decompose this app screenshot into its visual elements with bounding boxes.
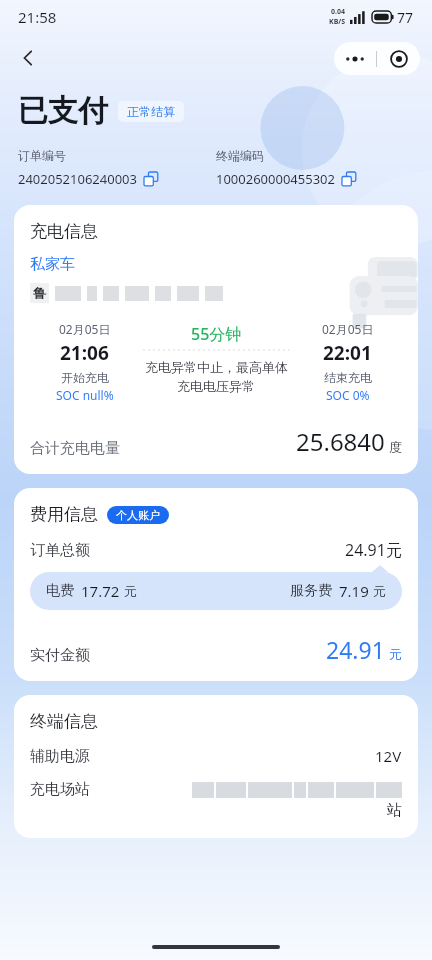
- staticText: 充电电压异常: [177, 378, 255, 394]
- staticText: 服务费: [290, 582, 332, 600]
- staticText: SOC null%: [56, 387, 114, 403]
- staticText: 充电场站: [30, 780, 90, 799]
- staticText: 合计充电电量: [30, 439, 120, 458]
- staticText: 鲁: [33, 285, 46, 301]
- staticText: 已支付: [18, 92, 108, 130]
- staticText: 1000260000455302: [216, 170, 335, 188]
- staticText: 17.72: [81, 581, 120, 601]
- button[interactable]: Copy terminal code: [342, 172, 357, 187]
- staticText: 辅助电源: [30, 747, 90, 766]
- staticText: 55分钟: [191, 323, 242, 345]
- staticText: 终端编码: [216, 148, 264, 163]
- staticText: SOC 0%: [326, 387, 370, 403]
- staticText: 25.6840: [296, 425, 385, 458]
- staticText: 77: [397, 8, 414, 27]
- button[interactable]: Back: [8, 38, 48, 78]
- staticText: 结束充电: [324, 370, 372, 385]
- staticText: 24.91: [326, 634, 385, 665]
- staticText: 元: [124, 583, 137, 599]
- button[interactable]: Copy order number: [144, 172, 159, 187]
- button[interactable]: Close: [377, 42, 420, 75]
- staticText: 7.19: [339, 581, 369, 601]
- staticText: 充电异常中止，最高单体: [145, 359, 288, 375]
- button[interactable]: More: [334, 42, 376, 75]
- staticText: 22:01: [323, 340, 372, 366]
- staticText: 费用信息: [30, 504, 98, 525]
- staticText: 2402052106240003: [18, 170, 137, 188]
- staticText: 21:06: [60, 340, 109, 366]
- staticText: 02月05日: [322, 321, 374, 337]
- staticText: 个人账户: [116, 508, 160, 522]
- staticText: 度: [389, 439, 402, 455]
- staticText: 24.91元: [345, 539, 402, 561]
- staticText: 0.04: [331, 7, 345, 17]
- staticText: 实付金额: [30, 646, 90, 665]
- staticText: KB/S: [329, 17, 346, 27]
- staticText: 私家车: [30, 255, 75, 274]
- staticText: 元: [373, 583, 386, 599]
- staticText: 站: [387, 801, 402, 820]
- staticText: 02月05日: [59, 321, 111, 337]
- staticText: 订单总额: [30, 541, 90, 560]
- staticText: 订单编号: [18, 148, 66, 163]
- staticText: 终端信息: [30, 711, 98, 732]
- staticText: 21:58: [18, 7, 57, 27]
- staticText: 正常结算: [127, 104, 175, 119]
- staticText: 12V: [375, 746, 402, 766]
- staticText: 元: [389, 646, 402, 662]
- staticText: 电费: [46, 582, 74, 600]
- staticText: 充电信息: [30, 221, 98, 242]
- staticText: 开始充电: [61, 370, 109, 385]
